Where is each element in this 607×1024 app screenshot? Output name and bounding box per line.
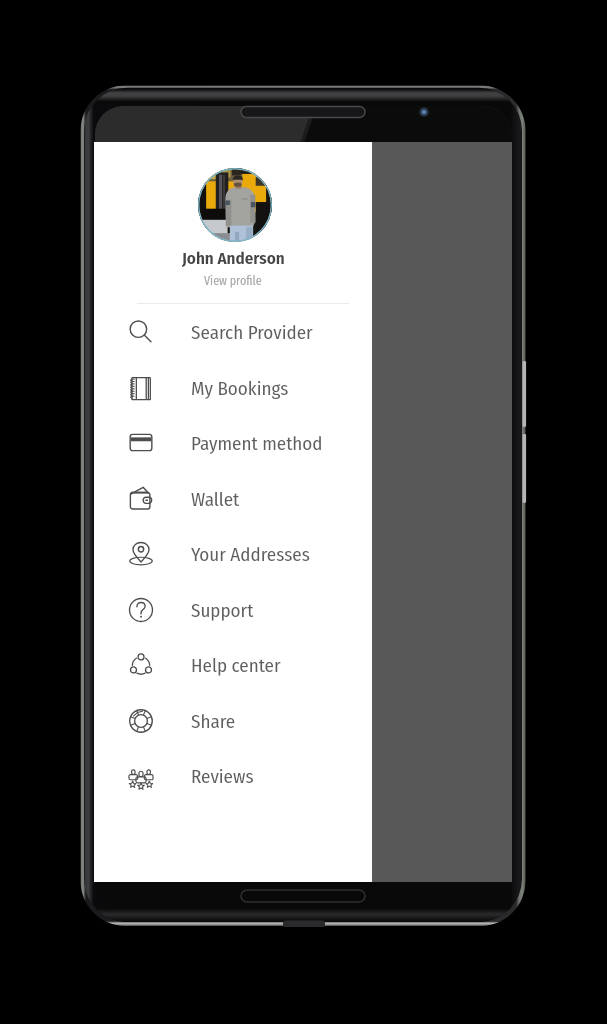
button[interactable]: Wallet bbox=[94, 471, 372, 527]
staticText: Wallet bbox=[191, 488, 240, 511]
staticText: Help center bbox=[191, 654, 281, 677]
button[interactable]: Search Provider bbox=[94, 304, 372, 360]
staticText: View profile bbox=[204, 274, 262, 288]
staticText: Search Provider bbox=[191, 321, 313, 344]
staticText: Reviews bbox=[191, 765, 254, 788]
staticText: Support bbox=[191, 599, 254, 622]
button[interactable]: Your Addresses bbox=[94, 526, 372, 582]
other: Content behind navigation drawer bbox=[94, 142, 512, 882]
staticText: Payment method bbox=[191, 432, 323, 455]
button[interactable]: Help center bbox=[94, 637, 372, 693]
button[interactable]: Reviews bbox=[94, 748, 372, 804]
staticText: Your Addresses bbox=[191, 543, 310, 566]
staticText: John Anderson bbox=[182, 248, 285, 268]
button[interactable]: John Anderson bbox=[94, 162, 372, 290]
staticText: My Bookings bbox=[191, 377, 289, 400]
button[interactable]: Payment method bbox=[94, 415, 372, 471]
staticText: Share bbox=[191, 710, 236, 733]
button[interactable]: My Bookings bbox=[94, 360, 372, 416]
button[interactable]: Share bbox=[94, 693, 372, 749]
button[interactable]: Support bbox=[94, 582, 372, 638]
